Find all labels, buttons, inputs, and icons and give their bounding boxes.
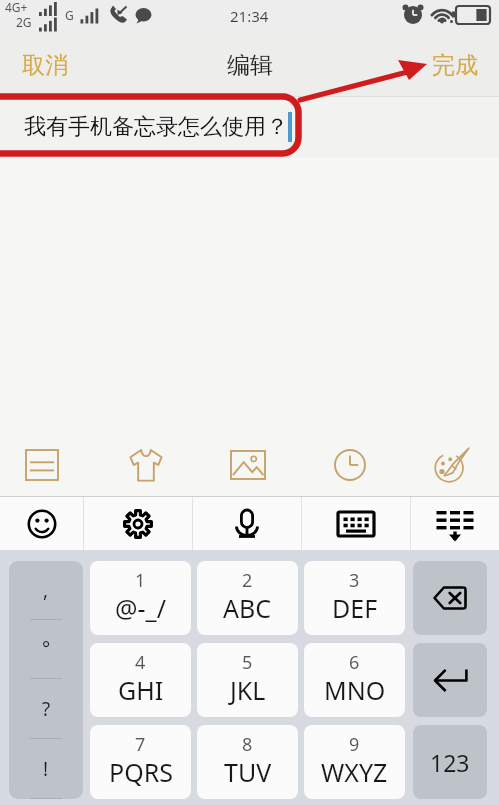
button[interactable]: 7 <box>90 725 191 799</box>
button[interactable]: Voice input <box>193 497 301 550</box>
button[interactable]: 6 <box>304 643 405 717</box>
staticText: 5 <box>242 650 253 675</box>
button[interactable]: , <box>9 561 83 799</box>
staticText: DEF <box>332 591 378 625</box>
staticText: , <box>43 577 49 603</box>
staticText: 6 <box>349 650 360 675</box>
button[interactable]: 5 <box>197 643 298 717</box>
button[interactable]: Draw <box>428 441 476 489</box>
button[interactable]: Emoji <box>0 497 83 550</box>
staticText: 我有手机备忘录怎么使用？ <box>24 113 288 141</box>
staticText: ABC <box>223 591 272 625</box>
staticText: ? <box>42 696 51 722</box>
button[interactable]: 取消 <box>0 41 90 90</box>
button[interactable]: Insert image <box>224 441 272 489</box>
staticText: ° <box>42 636 51 662</box>
button[interactable]: 2 <box>197 561 298 635</box>
button[interactable]: 3 <box>304 561 405 635</box>
staticText: G <box>65 7 74 23</box>
staticText: JKL <box>230 673 266 707</box>
staticText: 123 <box>430 747 470 778</box>
button[interactable]: Backspace <box>413 561 487 635</box>
staticText: 7 <box>135 732 146 757</box>
staticText: @-_/ <box>115 591 166 625</box>
staticText: TUV <box>224 755 272 789</box>
staticText: 9 <box>349 732 360 757</box>
staticText: 4 <box>135 650 146 675</box>
staticText: 2 <box>242 568 253 593</box>
staticText: MNO <box>324 673 386 707</box>
button[interactable]: 完成 <box>410 41 499 90</box>
button[interactable]: Enter <box>413 643 487 717</box>
staticText: 编辑 <box>227 51 273 80</box>
staticText: 2G <box>16 14 32 30</box>
staticText: 21:34 <box>230 6 269 26</box>
button[interactable]: Insert time <box>326 441 374 489</box>
staticText: ! <box>43 756 49 782</box>
staticText: GHI <box>118 673 164 707</box>
button[interactable]: 8 <box>197 725 298 799</box>
staticText: PQRS <box>109 755 173 789</box>
button[interactable]: 9 <box>304 725 405 799</box>
staticText: 取消 <box>22 51 68 80</box>
staticText: WXYZ <box>321 755 388 789</box>
button[interactable]: 123 <box>413 725 487 799</box>
button[interactable]: Text format <box>18 441 66 489</box>
staticText: 1 <box>135 568 146 593</box>
button[interactable]: Theme <box>122 441 170 489</box>
button[interactable]: Settings <box>84 497 192 550</box>
button[interactable]: 4 <box>90 643 191 717</box>
staticText: 3 <box>349 568 360 593</box>
button[interactable]: 1 <box>90 561 191 635</box>
button[interactable]: Keyboard <box>302 497 410 550</box>
staticText: 完成 <box>432 51 478 80</box>
staticText: 4G+ <box>5 0 28 15</box>
button[interactable]: Hide keyboard <box>411 497 499 550</box>
staticText: 8 <box>242 732 253 757</box>
